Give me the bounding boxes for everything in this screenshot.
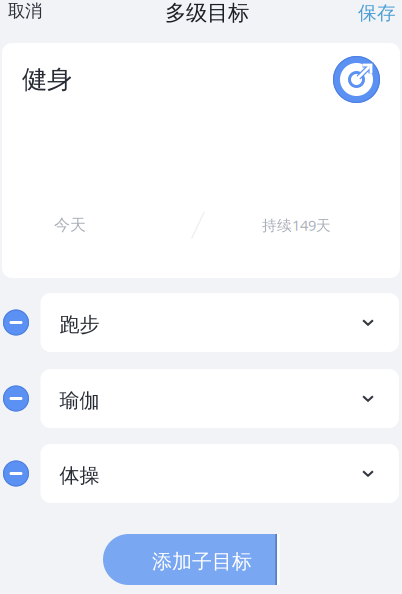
button[interactable]: 取消: [8, 0, 42, 26]
staticText: 多级目标: [165, 0, 249, 26]
button[interactable]: 体操: [40, 444, 399, 503]
button[interactable]: 瑜伽: [40, 369, 399, 428]
button[interactable]: 保存: [358, 1, 396, 24]
button[interactable]: 移除跑步: [3, 309, 29, 335]
staticText: 健身: [22, 64, 72, 95]
staticText: 添加子目标: [152, 549, 252, 574]
staticText: 瑜伽: [59, 388, 99, 413]
button[interactable]: 跑步: [40, 293, 399, 352]
button[interactable]: 移除瑜伽: [3, 385, 29, 411]
staticText: 取消: [8, 0, 42, 22]
staticText: 跑步: [59, 312, 99, 337]
staticText: 体操: [59, 463, 99, 488]
button[interactable]: 添加子目标: [103, 534, 362, 585]
staticText: 今天: [54, 215, 86, 235]
staticText: 持续149天: [262, 215, 331, 235]
staticText: 保存: [358, 1, 396, 24]
button[interactable]: 移除体操: [3, 460, 29, 486]
